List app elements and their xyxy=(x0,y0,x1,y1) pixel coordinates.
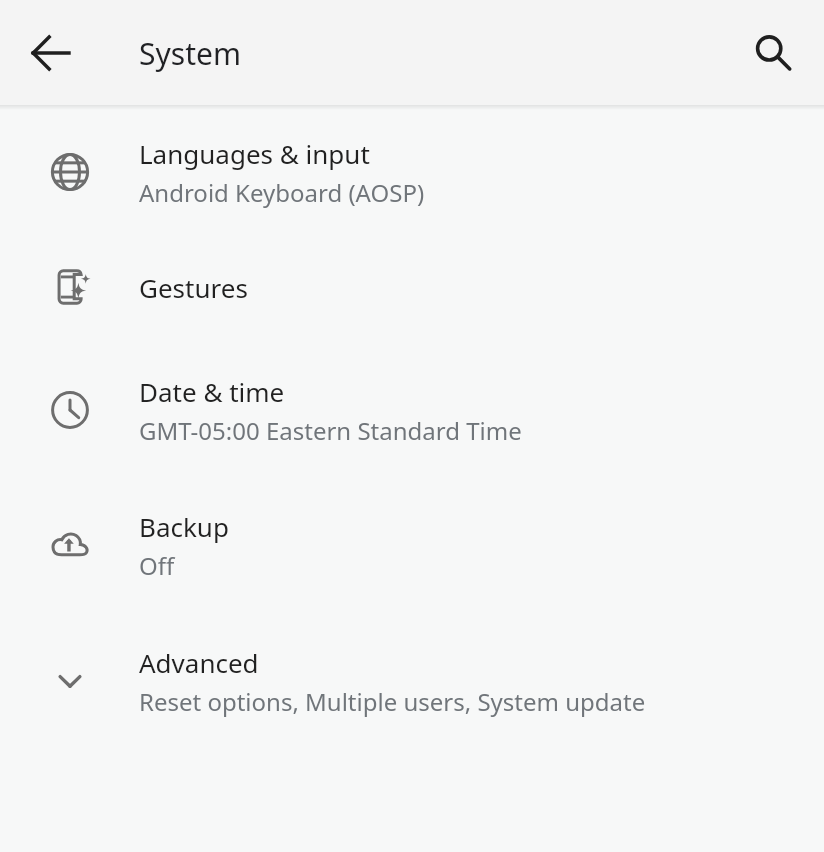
staticText: Languages & input xyxy=(139,136,370,171)
staticText: Off xyxy=(139,549,175,582)
button[interactable]: Advanced xyxy=(0,616,824,746)
button[interactable]: Languages & input xyxy=(0,116,824,228)
staticText: Gestures xyxy=(139,270,248,305)
staticText: Android Keyboard (AOSP) xyxy=(139,176,425,209)
button[interactable]: Backup xyxy=(0,474,824,616)
staticText: Reset options, Multiple users, System up… xyxy=(139,685,646,718)
staticText: Advanced xyxy=(139,645,259,680)
button[interactable]: Gestures xyxy=(0,228,824,346)
staticText: Backup xyxy=(139,509,229,544)
staticText: Date & time xyxy=(139,374,285,409)
button[interactable]: Date & time xyxy=(0,346,824,474)
staticText: GMT-05:00 Eastern Standard Time xyxy=(139,414,522,447)
button[interactable]: Back xyxy=(11,13,91,93)
staticText: System xyxy=(139,33,241,74)
button[interactable]: Search xyxy=(733,13,813,93)
